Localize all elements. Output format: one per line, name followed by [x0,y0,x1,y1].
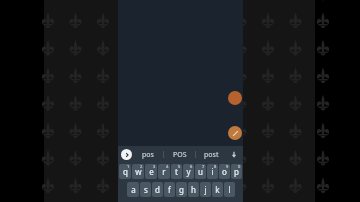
button[interactable]: e [145,164,157,179]
staticText: POS [173,150,187,160]
staticText: p [234,166,239,177]
button[interactable]: l [224,182,235,197]
button[interactable]: Edit [228,126,242,140]
button[interactable]: t [171,164,182,179]
staticText: 2 [140,164,143,169]
button[interactable]: g [176,182,187,197]
button[interactable]: a [127,182,139,197]
button[interactable]: o [219,164,230,179]
staticText: y [186,166,191,177]
button[interactable]: j [200,182,211,197]
button[interactable]: u [195,164,206,179]
staticText: pos [142,150,154,160]
staticText: q [123,166,128,177]
staticText: l [228,184,231,195]
button[interactable]: post [196,146,227,163]
staticText: i [211,166,214,177]
button[interactable]: r [158,164,170,179]
staticText: j [204,184,207,195]
staticText: 8 [214,164,217,169]
staticText: s [144,184,148,195]
button[interactable]: p [231,164,242,179]
staticText: d [155,184,160,195]
button[interactable]: k [212,182,223,197]
button[interactable]: i [207,164,218,179]
button[interactable]: pos [132,146,163,163]
staticText: 6 [190,164,193,169]
staticText: 1 [127,164,130,169]
staticText: 3 [153,164,156,169]
staticText: 9 [226,164,229,169]
button[interactable]: d [152,182,163,197]
button[interactable]: h [188,182,199,197]
staticText: post [204,150,219,160]
button[interactable]: Voice input [227,146,241,163]
staticText: e [149,166,154,177]
staticText: 4 [166,164,169,169]
staticText: 5 [178,164,181,169]
staticText: o [222,166,227,177]
button[interactable]: q [119,164,131,179]
staticText: a [131,184,136,195]
staticText: f [168,184,171,195]
staticText: w [135,166,142,177]
button[interactable]: f [164,182,175,197]
button[interactable]: POS [164,146,195,163]
staticText: k [215,184,220,195]
staticText: 7 [202,164,205,169]
button[interactable]: Contact avatar [228,91,242,105]
button[interactable]: Expand toolbar [121,149,132,160]
button[interactable]: s [140,182,151,197]
staticText: u [198,166,203,177]
button[interactable]: y [183,164,194,179]
button[interactable]: w [132,164,144,179]
staticText: t [175,166,178,177]
staticText: 0 [238,164,241,169]
staticText: r [162,166,166,177]
staticText: h [191,184,196,195]
staticText: g [179,184,184,195]
